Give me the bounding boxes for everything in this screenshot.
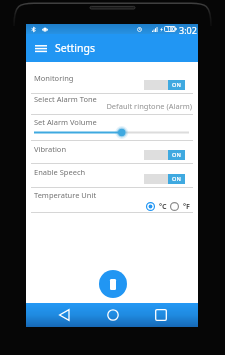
button[interactable]: Toggle, on [144, 150, 185, 160]
staticText: Monitoring [34, 73, 74, 83]
button[interactable]: Set Alarm Volume [26, 115, 198, 140]
staticText: °C [159, 201, 167, 211]
staticText: ON [172, 151, 181, 159]
staticText: 3:02 [179, 24, 197, 34]
staticText: Temperature Unit [34, 190, 97, 200]
button[interactable]: Monitoring [26, 70, 198, 93]
button[interactable]: Vibration [26, 141, 198, 163]
staticText: Set Alarm Volume [34, 117, 97, 127]
staticText: Select Alarm Tone [34, 94, 97, 104]
staticText: °F [183, 201, 190, 211]
staticText: Enable Speech [34, 167, 86, 177]
staticText: ON [172, 81, 181, 89]
button[interactable]: Open navigation menu [30, 34, 51, 62]
button[interactable]: Recent apps [146, 303, 176, 327]
button[interactable]: Enable Speech [26, 164, 198, 187]
staticText: Default ringtone (Alarm) [106, 101, 192, 111]
button[interactable]: Home [98, 303, 128, 327]
button[interactable]: Stop monitoring [99, 270, 127, 298]
button[interactable]: °C [146, 201, 167, 211]
button[interactable]: Toggle, on [144, 80, 185, 90]
button[interactable]: Back [49, 303, 79, 327]
staticText: ON [172, 175, 181, 183]
button[interactable]: °F [170, 201, 190, 211]
button[interactable]: Temperature Unit [26, 188, 198, 212]
staticText: Vibration [34, 144, 67, 154]
staticText: 100 [167, 26, 175, 32]
staticText: Settings [55, 41, 95, 55]
button[interactable]: Toggle, on [144, 174, 185, 184]
button[interactable]: Select Alarm Tone [26, 94, 198, 114]
